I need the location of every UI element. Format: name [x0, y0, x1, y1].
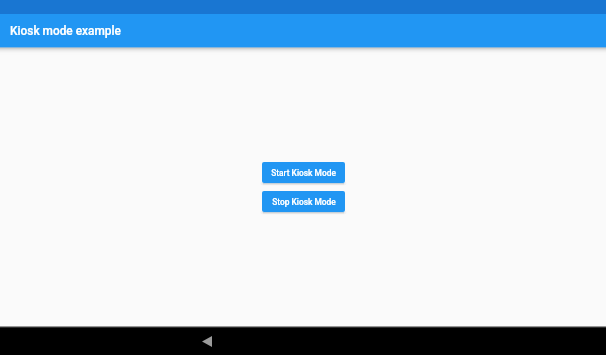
button[interactable]: Stop Kiosk Mode	[262, 191, 345, 212]
button[interactable]: Start Kiosk Mode	[262, 162, 345, 183]
staticText: Kiosk mode example	[10, 24, 121, 38]
button[interactable]: Back	[197, 331, 217, 351]
staticText: Start Kiosk Mode	[271, 168, 336, 178]
staticText: Stop Kiosk Mode	[272, 197, 336, 207]
